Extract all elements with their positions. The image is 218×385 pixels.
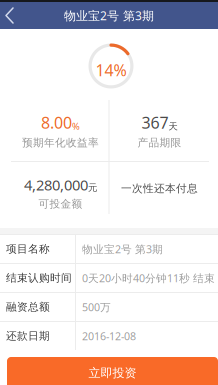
staticText: 物业宝2号 第3期 bbox=[82, 242, 163, 256]
staticText: 物业宝2号 第3期 bbox=[64, 7, 154, 23]
staticText: 一次性还本付息 bbox=[121, 182, 198, 195]
staticText: 结束认购时间 bbox=[6, 271, 72, 284]
staticText: 元 bbox=[88, 182, 97, 193]
staticText: 产品期限 bbox=[137, 136, 181, 149]
button[interactable]: 立即投资 bbox=[7, 357, 218, 385]
staticText: 367 bbox=[141, 112, 168, 133]
staticText: 立即投资 bbox=[88, 366, 136, 380]
staticText: 0天20小时40分钟11秒 结束 bbox=[82, 271, 215, 285]
staticText: 14% bbox=[95, 59, 126, 81]
staticText: 融资总额 bbox=[6, 300, 50, 313]
staticText: 4,280,000 bbox=[24, 175, 88, 194]
staticText: 500万 bbox=[82, 300, 111, 314]
staticText: 天 bbox=[168, 121, 177, 132]
button[interactable]: Back bbox=[0, 4, 24, 27]
staticText: 2016-12-08 bbox=[82, 329, 136, 343]
staticText: 项目名称 bbox=[6, 242, 50, 255]
staticText: % bbox=[72, 120, 80, 132]
staticText: 还款日期 bbox=[6, 329, 50, 342]
staticText: 8.00 bbox=[41, 112, 72, 133]
staticText: 可投金额 bbox=[38, 197, 82, 211]
staticText: 预期年化收益率 bbox=[22, 136, 99, 149]
